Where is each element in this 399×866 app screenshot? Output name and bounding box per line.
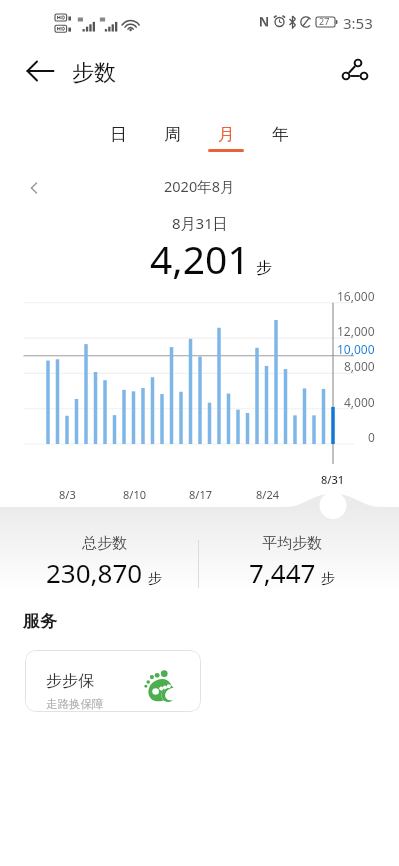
staticText: 走路换保障 (46, 697, 104, 711)
staticText: 4,000 (344, 394, 375, 410)
staticText: 8/3 (59, 487, 76, 502)
button[interactable]: Previous month (18, 172, 50, 204)
staticText: 230,870 (46, 555, 143, 590)
staticText: 10,000 (337, 341, 375, 357)
staticText: 步数 (72, 59, 116, 87)
staticText: 8/10 (123, 487, 146, 502)
staticText: 0 (368, 429, 375, 445)
staticText: 年 (272, 124, 289, 145)
staticText: 8月31日 (172, 213, 228, 233)
button[interactable]: 年 (253, 124, 307, 162)
staticText: 周 (164, 124, 181, 145)
staticText: 步步保 (46, 671, 94, 691)
staticText: 步 (321, 570, 335, 588)
button[interactable]: Back (20, 50, 62, 92)
staticText: 8/24 (256, 487, 279, 502)
staticText: 平均步数 (262, 534, 322, 553)
staticText: 8,000 (344, 358, 375, 374)
staticText: 4,201 (150, 232, 250, 285)
staticText: 2020年8月 (164, 176, 235, 196)
button[interactable]: 日 (91, 124, 145, 162)
staticText: 16,000 (337, 288, 375, 304)
staticText: 步 (148, 570, 162, 588)
staticText: 8/17 (189, 487, 212, 502)
button[interactable]: 月 (199, 124, 253, 162)
staticText: 总步数 (82, 534, 127, 553)
staticText: 月 (218, 124, 235, 145)
staticText: 8/31 (321, 472, 345, 487)
button[interactable]: 步步保 (25, 650, 201, 712)
staticText: 3:53 (343, 13, 373, 33)
button[interactable]: Share (334, 50, 376, 92)
staticText: 服务 (23, 611, 57, 632)
staticText: 27 (319, 15, 330, 27)
staticText: 12,000 (337, 323, 375, 339)
button[interactable]: 周 (145, 124, 199, 162)
staticText: 步 (256, 258, 272, 278)
staticText: 日 (110, 124, 127, 145)
staticText: 7,447 (249, 555, 316, 590)
